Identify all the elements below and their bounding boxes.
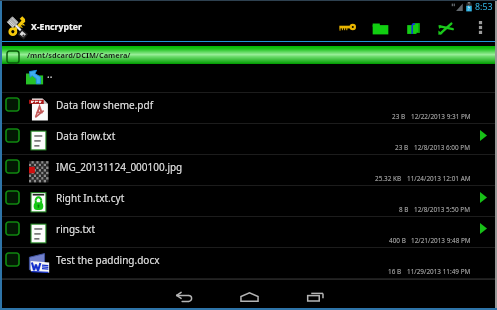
staticText: X-Encrypter (31, 21, 82, 33)
staticText: .. (47, 67, 53, 81)
staticText: Right In.txt.cyt (56, 191, 125, 205)
staticText: 8 B (399, 205, 409, 214)
button[interactable]: /mnt/sdcard/DCIM/Camera/ (0, 46, 497, 64)
staticText: 23 B (392, 112, 406, 121)
button[interactable]: Select rings.txt (6, 222, 19, 235)
button[interactable]: Select Test the padding.docx (6, 253, 19, 266)
button[interactable]: Select Right In.txt.cyt (0, 186, 497, 217)
button[interactable]: Select Data flow sheme.pdf (0, 93, 497, 124)
button[interactable]: Select rings.txt (0, 217, 497, 248)
staticText: Data flow.txt (56, 129, 116, 143)
staticText: 12/8/2013 5:50 PM (414, 205, 471, 214)
button[interactable]: Cut (430, 14, 463, 41)
staticText: 25.32 KB (375, 174, 402, 183)
staticText: 8:53 (475, 1, 493, 13)
button[interactable]: Recents (282, 284, 348, 310)
staticText: 11/29/2013 11:49 PM (407, 267, 471, 276)
button[interactable]: Select Data flow sheme.pdf (6, 98, 19, 111)
staticText: Data flow sheme.pdf (56, 98, 154, 112)
button[interactable]: .. (0, 64, 497, 93)
button[interactable]: Select Data flow.txt (6, 129, 19, 142)
staticText: IMG_20131124_000100.jpg (56, 160, 183, 174)
button[interactable]: Encrypt (331, 14, 364, 41)
button[interactable]: Back (150, 284, 216, 310)
staticText: 12/21/2013 9:48 PM (411, 236, 471, 245)
button[interactable]: Select Test the padding.docx (0, 248, 497, 279)
staticText: rings.txt (56, 222, 96, 236)
staticText: 12/22/2013 9:31 PM (411, 112, 471, 121)
button[interactable]: Select Right In.txt.cyt (6, 191, 19, 204)
button[interactable]: New folder (364, 14, 397, 41)
staticText: 11/24/2013 12:01 AM (407, 174, 471, 183)
button[interactable]: Select Data flow.txt (0, 124, 497, 155)
staticText: 23 B (395, 143, 409, 152)
button[interactable]: Copy (397, 14, 430, 41)
button[interactable]: Home (216, 284, 282, 310)
staticText: 400 B (389, 236, 406, 245)
button[interactable]: Select IMG_20131124_000100.jpg (6, 160, 19, 173)
button[interactable]: More options (463, 14, 497, 41)
staticText: 12/8/2013 6:00 PM (414, 143, 471, 152)
staticText: 16 B (388, 267, 402, 276)
staticText: /mnt/sdcard/DCIM/Camera/ (27, 50, 131, 60)
button[interactable]: Select IMG_20131124_000100.jpg (0, 155, 497, 186)
staticText: Test the padding.docx (56, 253, 160, 267)
